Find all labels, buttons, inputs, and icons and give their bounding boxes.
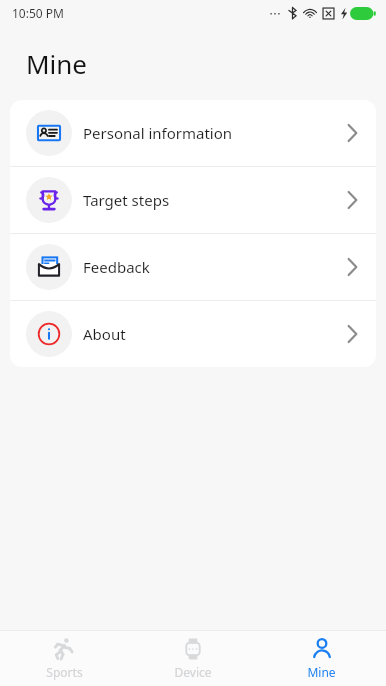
staticText: Mine: [26, 46, 88, 81]
staticText: Mine: [307, 664, 336, 680]
staticText: About: [83, 324, 126, 344]
button[interactable]: Target steps: [10, 167, 376, 233]
button[interactable]: Feedback: [10, 234, 376, 300]
staticText: Personal information: [83, 123, 233, 143]
staticText: 10:50 PM: [12, 5, 64, 21]
staticText: Device: [174, 664, 212, 680]
button[interactable]: Personal information: [10, 100, 376, 166]
staticText: Sports: [46, 664, 83, 680]
staticText: Target steps: [83, 190, 170, 210]
staticText: Feedback: [83, 257, 150, 277]
button[interactable]: Sports: [0, 637, 128, 680]
button[interactable]: About: [10, 301, 376, 367]
button[interactable]: Device: [128, 637, 257, 680]
button[interactable]: Mine: [257, 637, 386, 680]
